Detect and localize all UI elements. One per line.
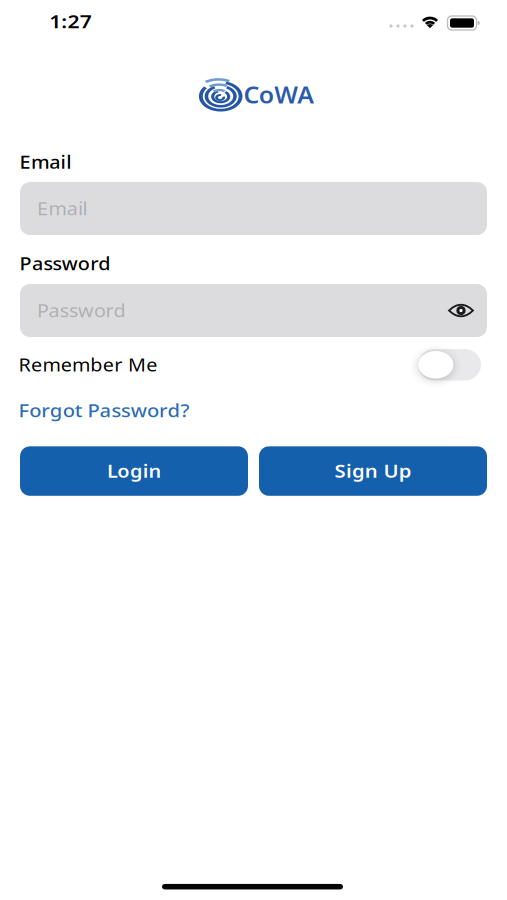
staticText: Email (19, 150, 65, 173)
button[interactable]: Remember Me (418, 349, 481, 380)
button[interactable]: Login (20, 446, 248, 496)
staticText: Email (37, 197, 81, 220)
button[interactable]: Forgot Password? (18, 397, 176, 422)
button[interactable]: Sign Up (259, 446, 487, 496)
staticText: Forgot Password? (18, 397, 176, 422)
staticText: Login (110, 460, 157, 483)
staticText: Password (19, 252, 99, 275)
staticText: Sign Up (340, 460, 406, 483)
button[interactable]: Show password (448, 303, 474, 317)
staticText: CoWA (247, 79, 311, 110)
staticText: Password (37, 299, 115, 322)
staticText: 1:27 (53, 10, 88, 33)
staticText: Remember Me (18, 353, 140, 376)
